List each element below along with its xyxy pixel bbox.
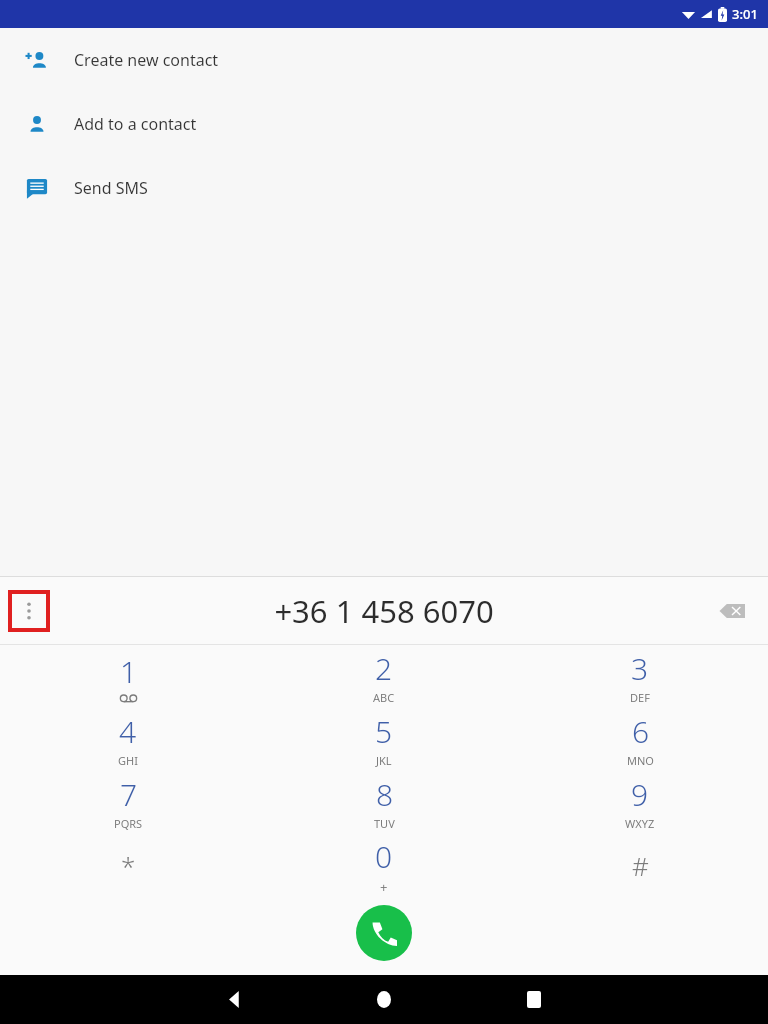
button[interactable]: Create new contact	[0, 28, 768, 92]
button[interactable]: More options	[8, 590, 50, 632]
staticText: #	[632, 848, 649, 883]
staticText: *	[121, 848, 136, 883]
staticText: PQRS	[114, 816, 143, 831]
staticText: +36 1 458 6070	[274, 590, 494, 632]
staticText: 4	[119, 711, 137, 752]
button[interactable]: #	[512, 834, 768, 897]
button[interactable]: 1	[0, 645, 256, 708]
staticText: 2	[375, 648, 393, 689]
staticText: JKL	[376, 753, 392, 768]
staticText: 6	[632, 711, 650, 752]
button[interactable]: 9	[512, 771, 768, 834]
staticText: WXYZ	[625, 816, 655, 831]
button[interactable]: 2	[256, 645, 512, 708]
staticText: 0	[375, 836, 393, 877]
staticText: MNO	[627, 753, 654, 768]
button[interactable]: 3	[512, 645, 768, 708]
button[interactable]: 6	[512, 708, 768, 771]
staticText: DEF	[630, 690, 650, 705]
staticText: +	[380, 878, 388, 896]
staticText: 3	[631, 648, 649, 689]
button[interactable]: Send SMS	[0, 156, 768, 220]
button[interactable]: *	[0, 834, 256, 897]
staticText: 3:01	[732, 5, 758, 23]
staticText: 9	[631, 774, 649, 815]
button[interactable]: Home	[309, 975, 459, 1024]
button[interactable]: Recent apps	[459, 975, 609, 1024]
staticText: Create new contact	[74, 49, 219, 71]
button[interactable]: Call	[356, 905, 412, 961]
button[interactable]: Add to a contact	[0, 92, 768, 156]
button[interactable]: 7	[0, 771, 256, 834]
button[interactable]: 5	[256, 708, 512, 771]
staticText: 5	[375, 711, 393, 752]
staticText: 1	[120, 651, 138, 692]
button[interactable]: Backspace	[712, 591, 752, 631]
staticText: TUV	[374, 816, 395, 831]
button[interactable]: Back	[159, 975, 309, 1024]
staticText: 8	[376, 774, 394, 815]
staticText: 7	[120, 774, 138, 815]
staticText: Send SMS	[74, 177, 148, 199]
button[interactable]: 8	[256, 771, 512, 834]
staticText: Add to a contact	[74, 113, 197, 135]
button[interactable]: 4	[0, 708, 256, 771]
staticText: GHI	[118, 753, 138, 768]
button[interactable]: 0	[256, 834, 512, 897]
staticText: ABC	[373, 690, 395, 705]
